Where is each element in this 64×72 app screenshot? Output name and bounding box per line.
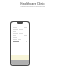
button[interactable] bbox=[13, 30, 27, 32]
button[interactable] bbox=[13, 38, 27, 40]
button[interactable] bbox=[13, 34, 27, 36]
button[interactable] bbox=[13, 32, 27, 34]
button[interactable] bbox=[13, 36, 27, 38]
staticText: Healthcare Clinic bbox=[20, 2, 45, 6]
button[interactable] bbox=[13, 26, 27, 28]
button[interactable] bbox=[13, 28, 27, 30]
staticText: Appointment Booking bbox=[20, 4, 45, 7]
